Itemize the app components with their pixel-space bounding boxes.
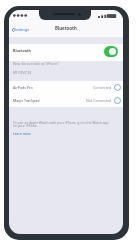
staticText: Connected xyxy=(93,85,112,90)
button[interactable]: Learn more xyxy=(13,131,31,135)
button[interactable]: AirPods Pro xyxy=(9,81,123,94)
staticText: Magic Trackpad xyxy=(13,98,40,103)
staticText: Bluetooth xyxy=(55,25,77,31)
staticText: Settings xyxy=(14,27,30,32)
staticText: Not Connected xyxy=(86,98,112,103)
staticText: AirPods Pro xyxy=(13,85,33,90)
staticText: Now discoverable as “iPhone”. xyxy=(13,61,60,65)
staticText: MY DEVICES xyxy=(13,71,32,75)
button[interactable]: Magic Trackpad xyxy=(9,94,123,107)
staticText: Bluetooth xyxy=(13,48,31,53)
button[interactable]: Bluetooth xyxy=(9,44,123,61)
button[interactable]: Settings xyxy=(11,25,31,34)
staticText: To pair an Apple Watch with your iPhone,… xyxy=(13,120,111,128)
button[interactable]: Bluetooth toggle xyxy=(104,46,118,57)
